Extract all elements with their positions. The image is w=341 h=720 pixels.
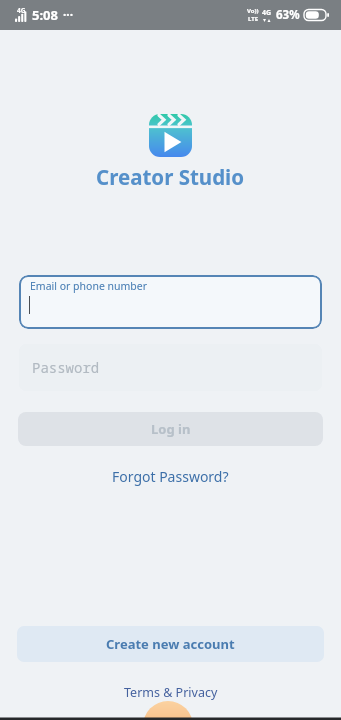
staticText: 4G <box>262 8 272 18</box>
button[interactable]: Email or phone number <box>19 275 322 329</box>
button[interactable]: Create new account <box>17 626 324 662</box>
staticText: 63% <box>276 7 300 23</box>
staticText: Log in <box>151 420 191 438</box>
staticText: Vo)) <box>247 7 259 15</box>
staticText: LTE <box>248 15 259 23</box>
staticText: Password <box>32 358 100 377</box>
staticText: 5:08 <box>32 6 58 24</box>
staticText: 4G <box>17 6 26 15</box>
button[interactable]: Terms & Privacy <box>124 684 218 701</box>
staticText: Create new account <box>106 635 235 653</box>
staticText: Terms & Privacy <box>124 684 218 701</box>
button[interactable]: Password <box>19 344 322 391</box>
staticText: Email or phone number <box>30 279 148 293</box>
staticText: ··· <box>63 6 74 22</box>
button[interactable]: Forgot Password? <box>112 467 229 486</box>
button[interactable]: Log in <box>18 412 323 446</box>
staticText: Creator Studio <box>96 163 245 191</box>
